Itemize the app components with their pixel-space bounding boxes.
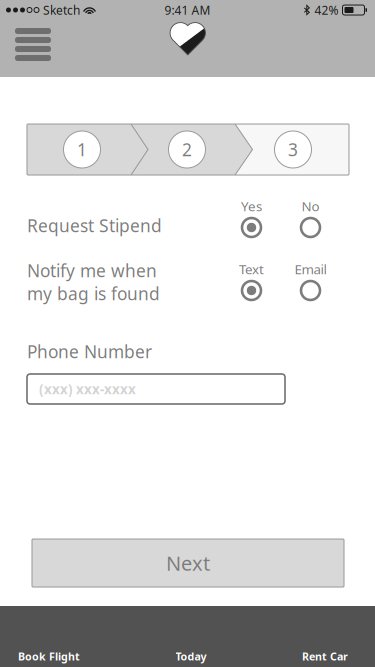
staticText: 2 [182, 138, 192, 161]
staticText: Book Flight [18, 649, 80, 663]
staticText: Notify me when my bag is found [27, 259, 160, 305]
button[interactable]: Text [222, 256, 281, 300]
button[interactable]: No [281, 193, 340, 237]
button[interactable]: Rent Car [302, 602, 348, 667]
button[interactable]: 3 [237, 124, 349, 175]
staticText: 42% [314, 2, 338, 18]
staticText: 3 [288, 138, 298, 161]
staticText: Next [166, 550, 210, 576]
button[interactable]: 2 [137, 124, 237, 175]
staticText: (xxx) xxx-xxxx [39, 380, 136, 398]
staticText: Rent Car [302, 649, 348, 663]
staticText: Phone Number [27, 340, 152, 363]
staticText: 1 [77, 138, 87, 161]
button[interactable]: Yes [222, 193, 281, 237]
button[interactable]: Book Flight [18, 602, 80, 667]
button[interactable]: Email [281, 256, 340, 300]
staticText: Request Stipend [27, 214, 162, 237]
staticText: 9:41 AM [164, 2, 210, 18]
button[interactable]: Menu [15, 28, 51, 61]
staticText: Sketch [43, 2, 80, 18]
staticText: Yes [241, 197, 262, 215]
button[interactable]: Home [171, 24, 204, 55]
button[interactable]: (xxx) xxx-xxxx [27, 374, 285, 404]
staticText: Text [239, 260, 264, 278]
staticText: No [301, 197, 319, 215]
button[interactable]: Today [175, 602, 206, 667]
staticText: Today [175, 649, 206, 663]
button[interactable]: Next [32, 539, 344, 587]
staticText: Email [294, 260, 326, 278]
button[interactable]: 1 [27, 124, 137, 175]
